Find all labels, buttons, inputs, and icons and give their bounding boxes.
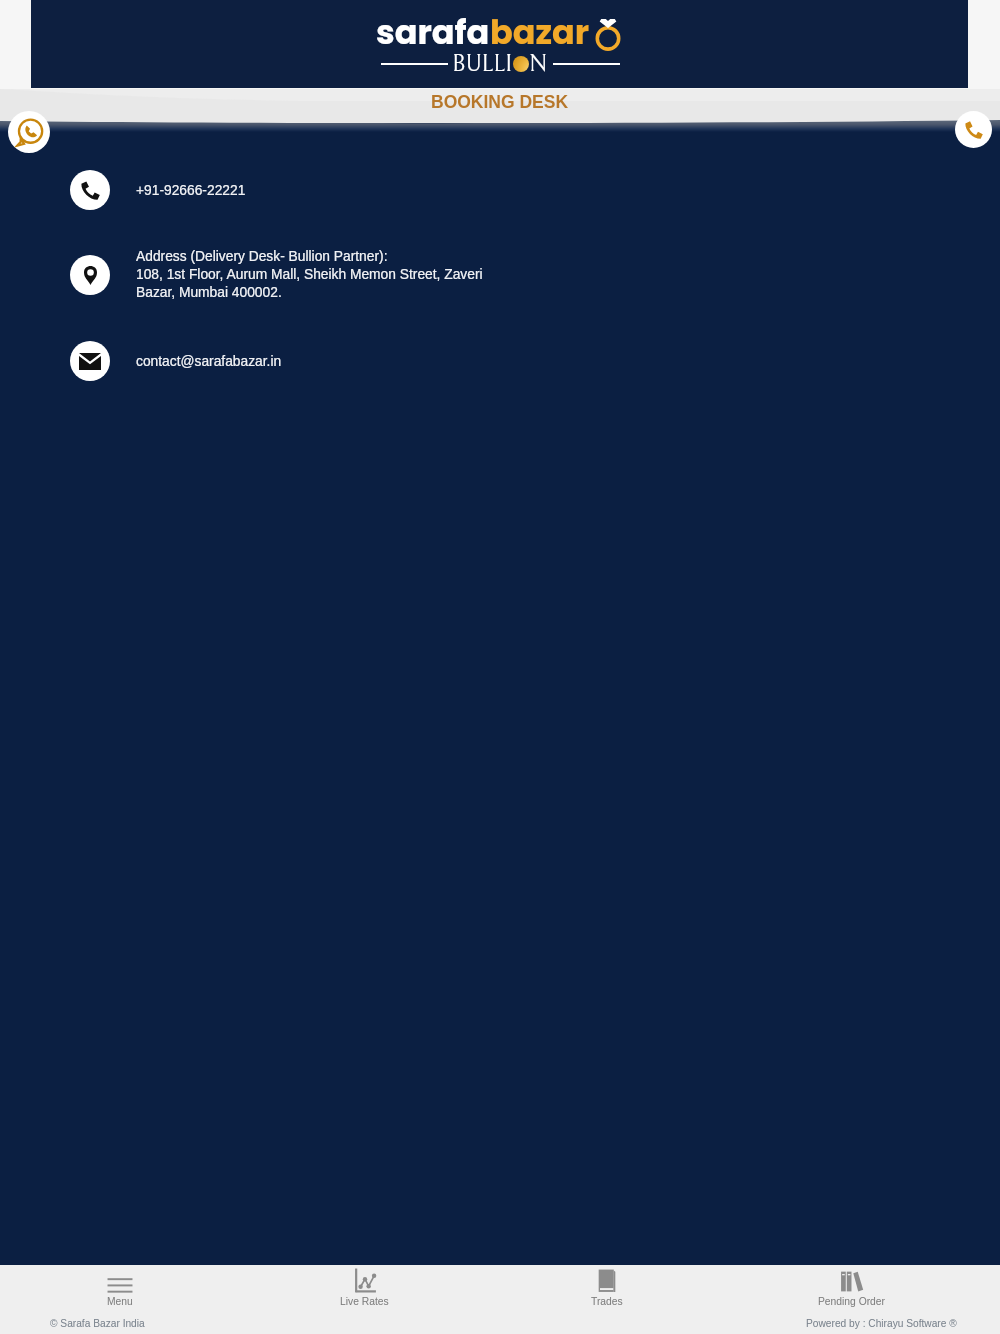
button[interactable]: Trades (547, 1268, 667, 1318)
staticText: Powered by : Chirayu Software ® (806, 1318, 957, 1329)
button[interactable]: Email (70, 341, 282, 381)
staticText: N (529, 51, 548, 77)
button[interactable]: Chat on WhatsApp (8, 111, 50, 153)
button[interactable]: Phone (70, 170, 246, 210)
button[interactable]: Menu (60, 1268, 180, 1318)
other: Email (70, 341, 110, 381)
staticText: BULLI (452, 51, 513, 77)
staticText: Pending Order (818, 1296, 885, 1308)
staticText: contact@sarafabazar.in (136, 354, 282, 369)
button[interactable]: Call us (955, 111, 992, 148)
other: Address (70, 255, 110, 295)
staticText: Address (Delivery Desk- Bullion Partner)… (136, 249, 483, 300)
staticText: sarafa (376, 9, 490, 56)
staticText: Trades (591, 1296, 623, 1308)
button[interactable]: Address (70, 249, 483, 300)
other: Phone (70, 170, 110, 210)
staticText: Menu (107, 1296, 133, 1308)
staticText: bazar (490, 9, 590, 56)
staticText: +91-92666-22221 (136, 183, 246, 198)
staticText: BOOKING DESK (431, 92, 569, 112)
button[interactable]: Pending Order (791, 1268, 911, 1318)
staticText: Live Rates (340, 1296, 389, 1308)
button[interactable]: Live Rates (304, 1268, 424, 1318)
staticText: © Sarafa Bazar India (50, 1318, 145, 1329)
